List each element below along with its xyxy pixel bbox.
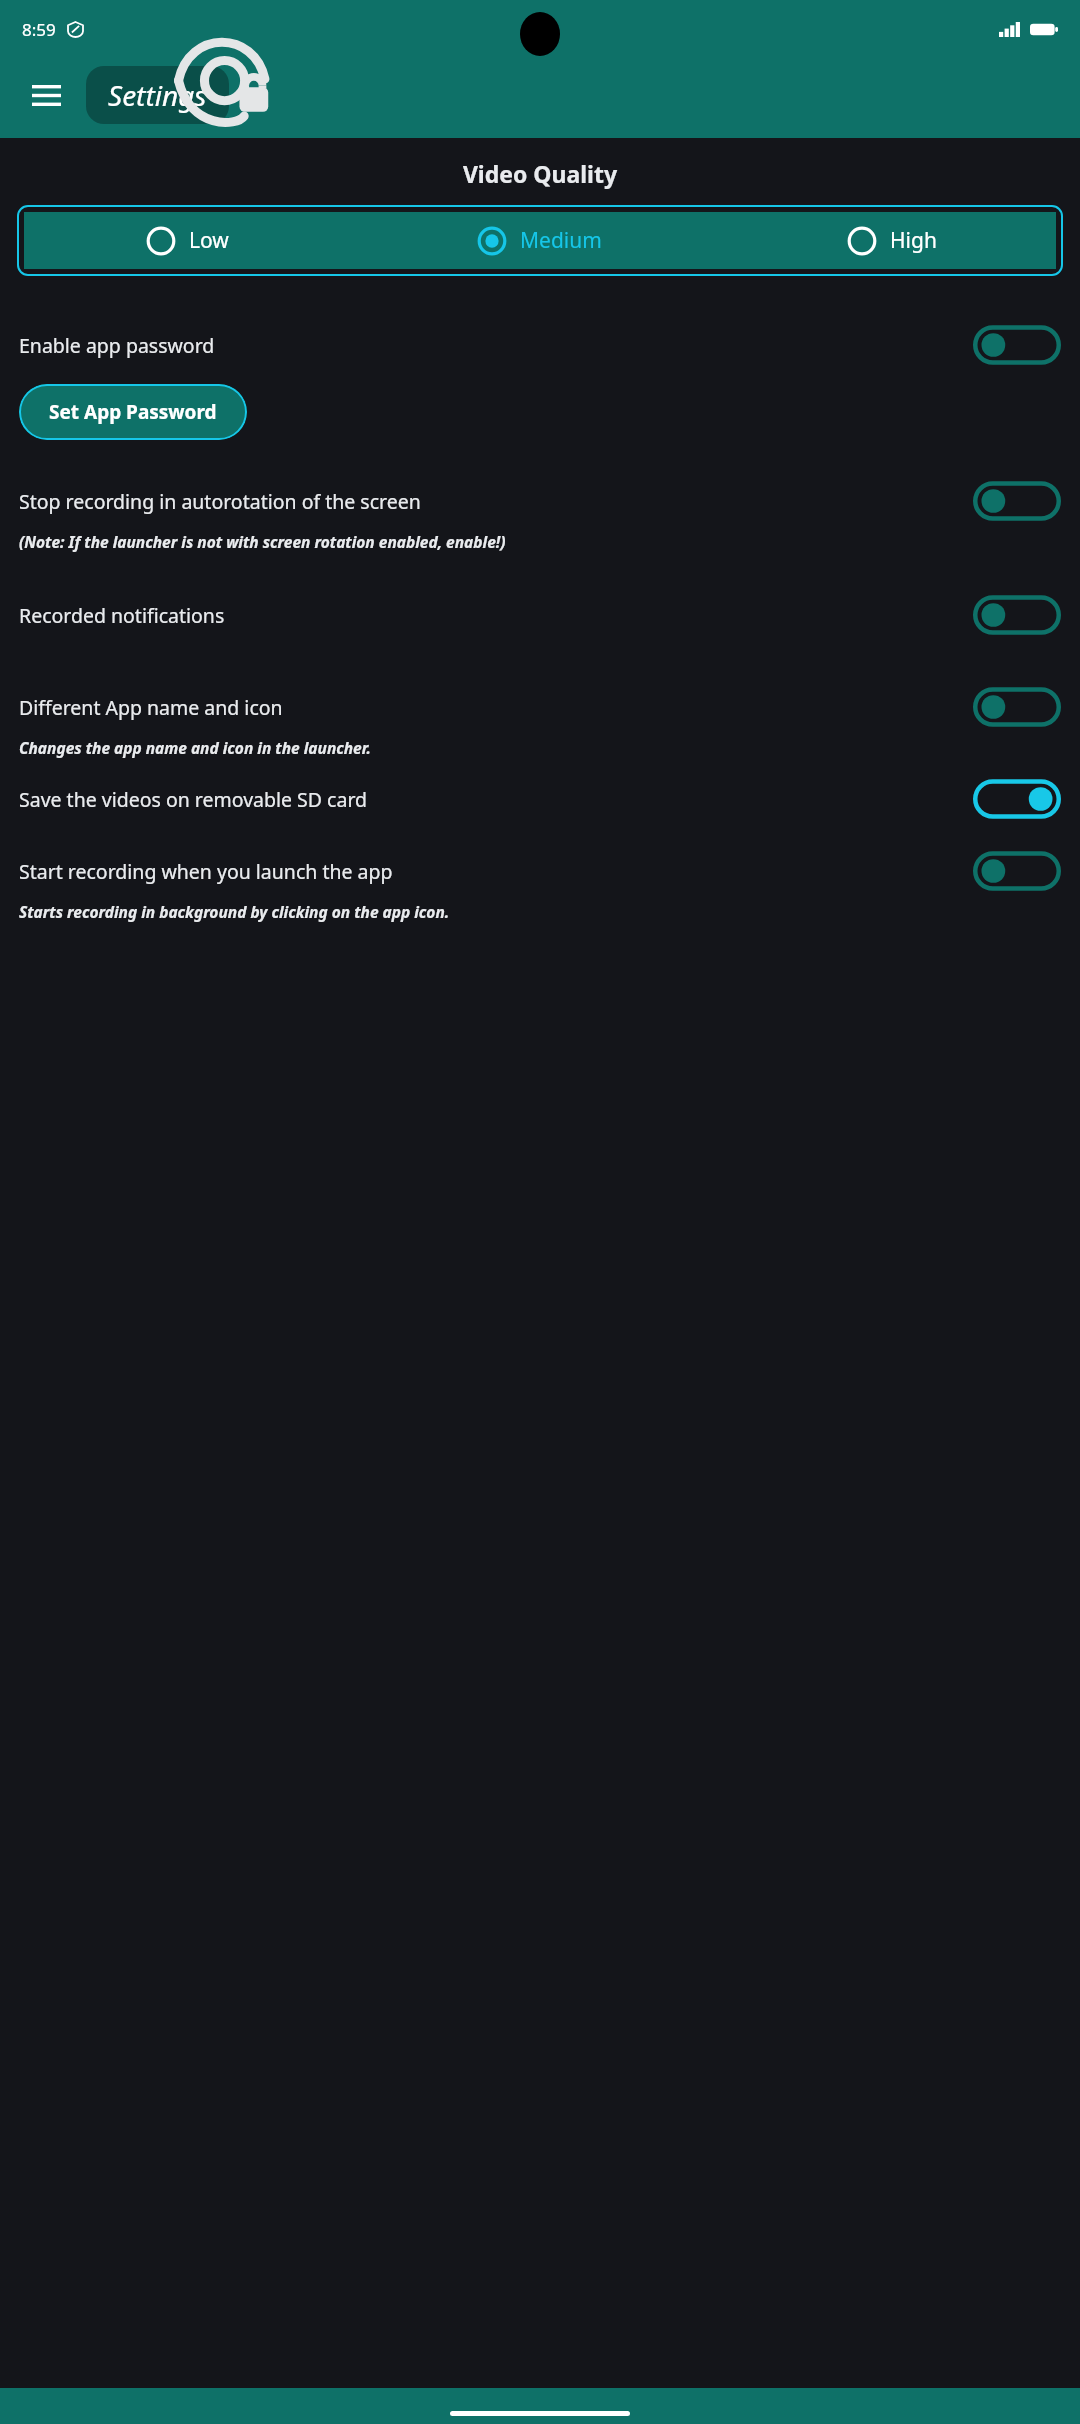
staticText: Different App name and icon (19, 694, 961, 721)
button[interactable]: Recorded notifications (973, 592, 1061, 638)
button[interactable]: Enable app password (0, 322, 1080, 368)
button[interactable]: Settings (86, 66, 229, 124)
staticText: Save the videos on removable SD card (19, 786, 961, 813)
button[interactable]: Open navigation menu (20, 69, 72, 121)
staticText: Settings (108, 76, 207, 114)
staticText: Low (189, 226, 229, 255)
button[interactable]: Save the videos on removable SD card (0, 776, 1080, 822)
button[interactable]: Stop recording in autorotation of the sc… (0, 478, 1080, 524)
staticText: Start recording when you launch the app (19, 858, 961, 885)
staticText: Set App Password (49, 399, 217, 425)
staticText: Changes the app name and icon in the lau… (19, 737, 1061, 758)
button[interactable]: Low (24, 212, 351, 269)
staticText: Recorded notifications (19, 602, 961, 629)
staticText: 8:59 (22, 18, 56, 41)
button[interactable]: Save the videos on removable SD card (973, 776, 1061, 822)
button[interactable]: Start recording when you launch the app (0, 848, 1080, 894)
button[interactable]: Different App name and icon (973, 684, 1061, 730)
button[interactable]: Different App name and icon (0, 684, 1080, 730)
button[interactable]: High (728, 212, 1056, 269)
button[interactable]: Stop recording in autorotation of the sc… (973, 478, 1061, 524)
button[interactable]: Enable app password (973, 322, 1061, 368)
staticText: Starts recording in background by clicki… (19, 901, 1061, 922)
button[interactable]: Medium (351, 212, 728, 269)
staticText: Stop recording in autorotation of the sc… (19, 488, 961, 515)
staticText: Enable app password (19, 332, 961, 359)
button[interactable]: Start recording when you launch the app (973, 848, 1061, 894)
staticText: Medium (520, 226, 602, 255)
staticText: High (890, 226, 937, 255)
staticText: (Note: If the launcher is not with scree… (19, 531, 1061, 552)
button[interactable]: Set App Password (19, 384, 247, 440)
button[interactable]: Recorded notifications (0, 592, 1080, 638)
staticText: Video Quality (0, 158, 1080, 189)
